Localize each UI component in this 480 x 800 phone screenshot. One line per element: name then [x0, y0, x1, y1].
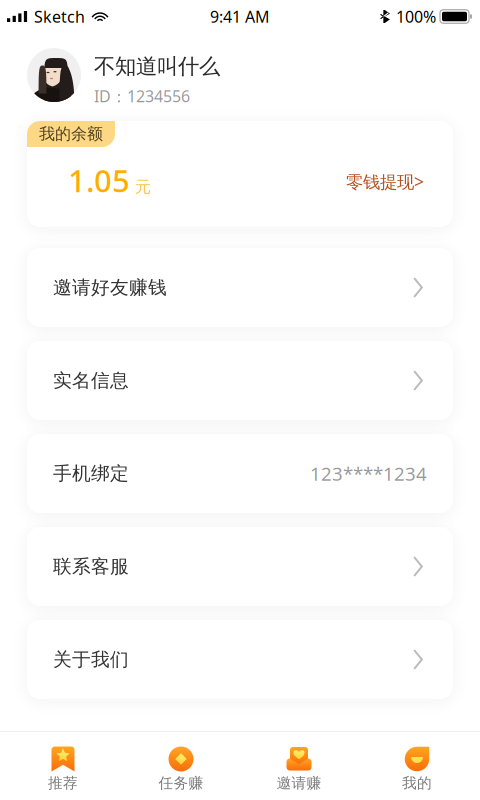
- staticText: 100%: [396, 6, 436, 27]
- staticText: 元: [130, 177, 151, 197]
- button[interactable]: 关于我们: [27, 620, 453, 699]
- staticText: 手机绑定: [53, 462, 129, 485]
- staticText: 推荐: [48, 774, 78, 792]
- button[interactable]: 零钱提现>: [346, 170, 424, 193]
- button[interactable]: 邀请好友赚钱: [27, 248, 453, 327]
- staticText: 我的余额: [39, 124, 103, 144]
- staticText: 任务赚: [158, 774, 203, 792]
- button[interactable]: 邀请赚: [240, 732, 358, 800]
- button[interactable]: 推荐: [4, 732, 122, 800]
- staticText: 实名信息: [53, 369, 129, 392]
- staticText: 我的: [402, 774, 432, 792]
- staticText: 9:41 AM: [210, 6, 270, 27]
- staticText: Sketch: [34, 6, 85, 27]
- button[interactable]: 不知道叫什么: [0, 39, 480, 111]
- button[interactable]: 手机绑定: [27, 434, 453, 513]
- staticText: ID：1234556: [94, 85, 190, 107]
- button[interactable]: 实名信息: [27, 341, 453, 420]
- staticText: 邀请好友赚钱: [53, 276, 167, 299]
- staticText: 1.05: [68, 160, 130, 201]
- staticText: 不知道叫什么: [94, 53, 220, 79]
- button[interactable]: 我的: [358, 732, 476, 800]
- staticText: 联系客服: [53, 555, 129, 578]
- staticText: 零钱提现>: [346, 170, 424, 193]
- button[interactable]: 任务赚: [122, 732, 240, 800]
- button[interactable]: 联系客服: [27, 527, 453, 606]
- staticText: 123****1234: [310, 461, 427, 486]
- staticText: 关于我们: [53, 648, 129, 671]
- staticText: 邀请赚: [276, 774, 321, 792]
